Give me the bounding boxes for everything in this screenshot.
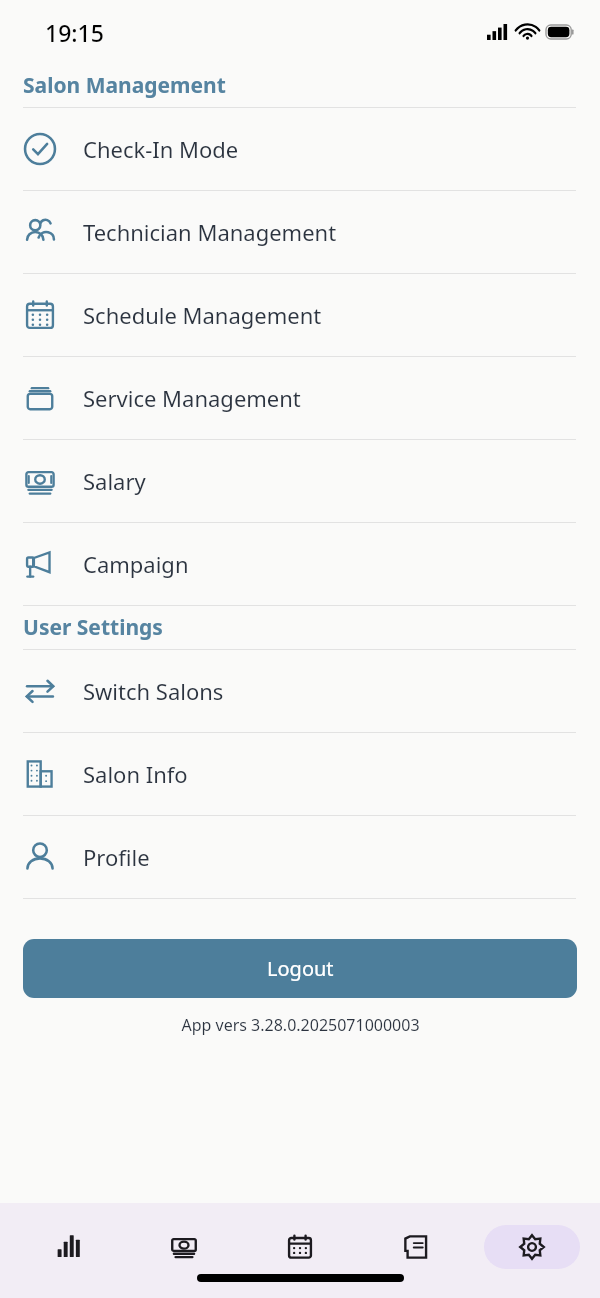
- button[interactable]: Campaign: [0, 523, 600, 605]
- button[interactable]: Salon Info: [0, 733, 600, 815]
- staticText: Service Management: [83, 383, 301, 413]
- staticText: Profile: [83, 842, 150, 872]
- button[interactable]: Service Management: [0, 357, 600, 439]
- button[interactable]: Technician Management: [0, 191, 600, 273]
- staticText: 19:15: [45, 17, 104, 48]
- staticText: Campaign: [83, 549, 189, 579]
- staticText: Switch Salons: [83, 676, 224, 706]
- button[interactable]: Logout: [23, 939, 577, 998]
- button[interactable]: Settings: [484, 1225, 580, 1269]
- staticText: Logout: [267, 955, 334, 982]
- button[interactable]: Switch Salons: [0, 650, 600, 732]
- button[interactable]: Reports: [20, 1225, 116, 1269]
- staticText: Salon Info: [83, 759, 188, 789]
- staticText: Schedule Management: [83, 300, 322, 330]
- button[interactable]: Invoices: [368, 1225, 464, 1269]
- staticText: Salary: [83, 466, 146, 496]
- staticText: Salon Management: [23, 71, 226, 100]
- staticText: Check-In Mode: [83, 134, 239, 164]
- button[interactable]: Salary: [0, 440, 600, 522]
- button[interactable]: Schedule Management: [0, 274, 600, 356]
- button[interactable]: Profile: [0, 816, 600, 898]
- button[interactable]: Payments: [136, 1225, 232, 1269]
- staticText: User Settings: [23, 613, 163, 642]
- button[interactable]: Calendar: [252, 1225, 348, 1269]
- staticText: App vers 3.28.0.2025071000003: [181, 1014, 420, 1036]
- staticText: Technician Management: [83, 217, 337, 247]
- button[interactable]: Check-In Mode: [0, 108, 600, 190]
